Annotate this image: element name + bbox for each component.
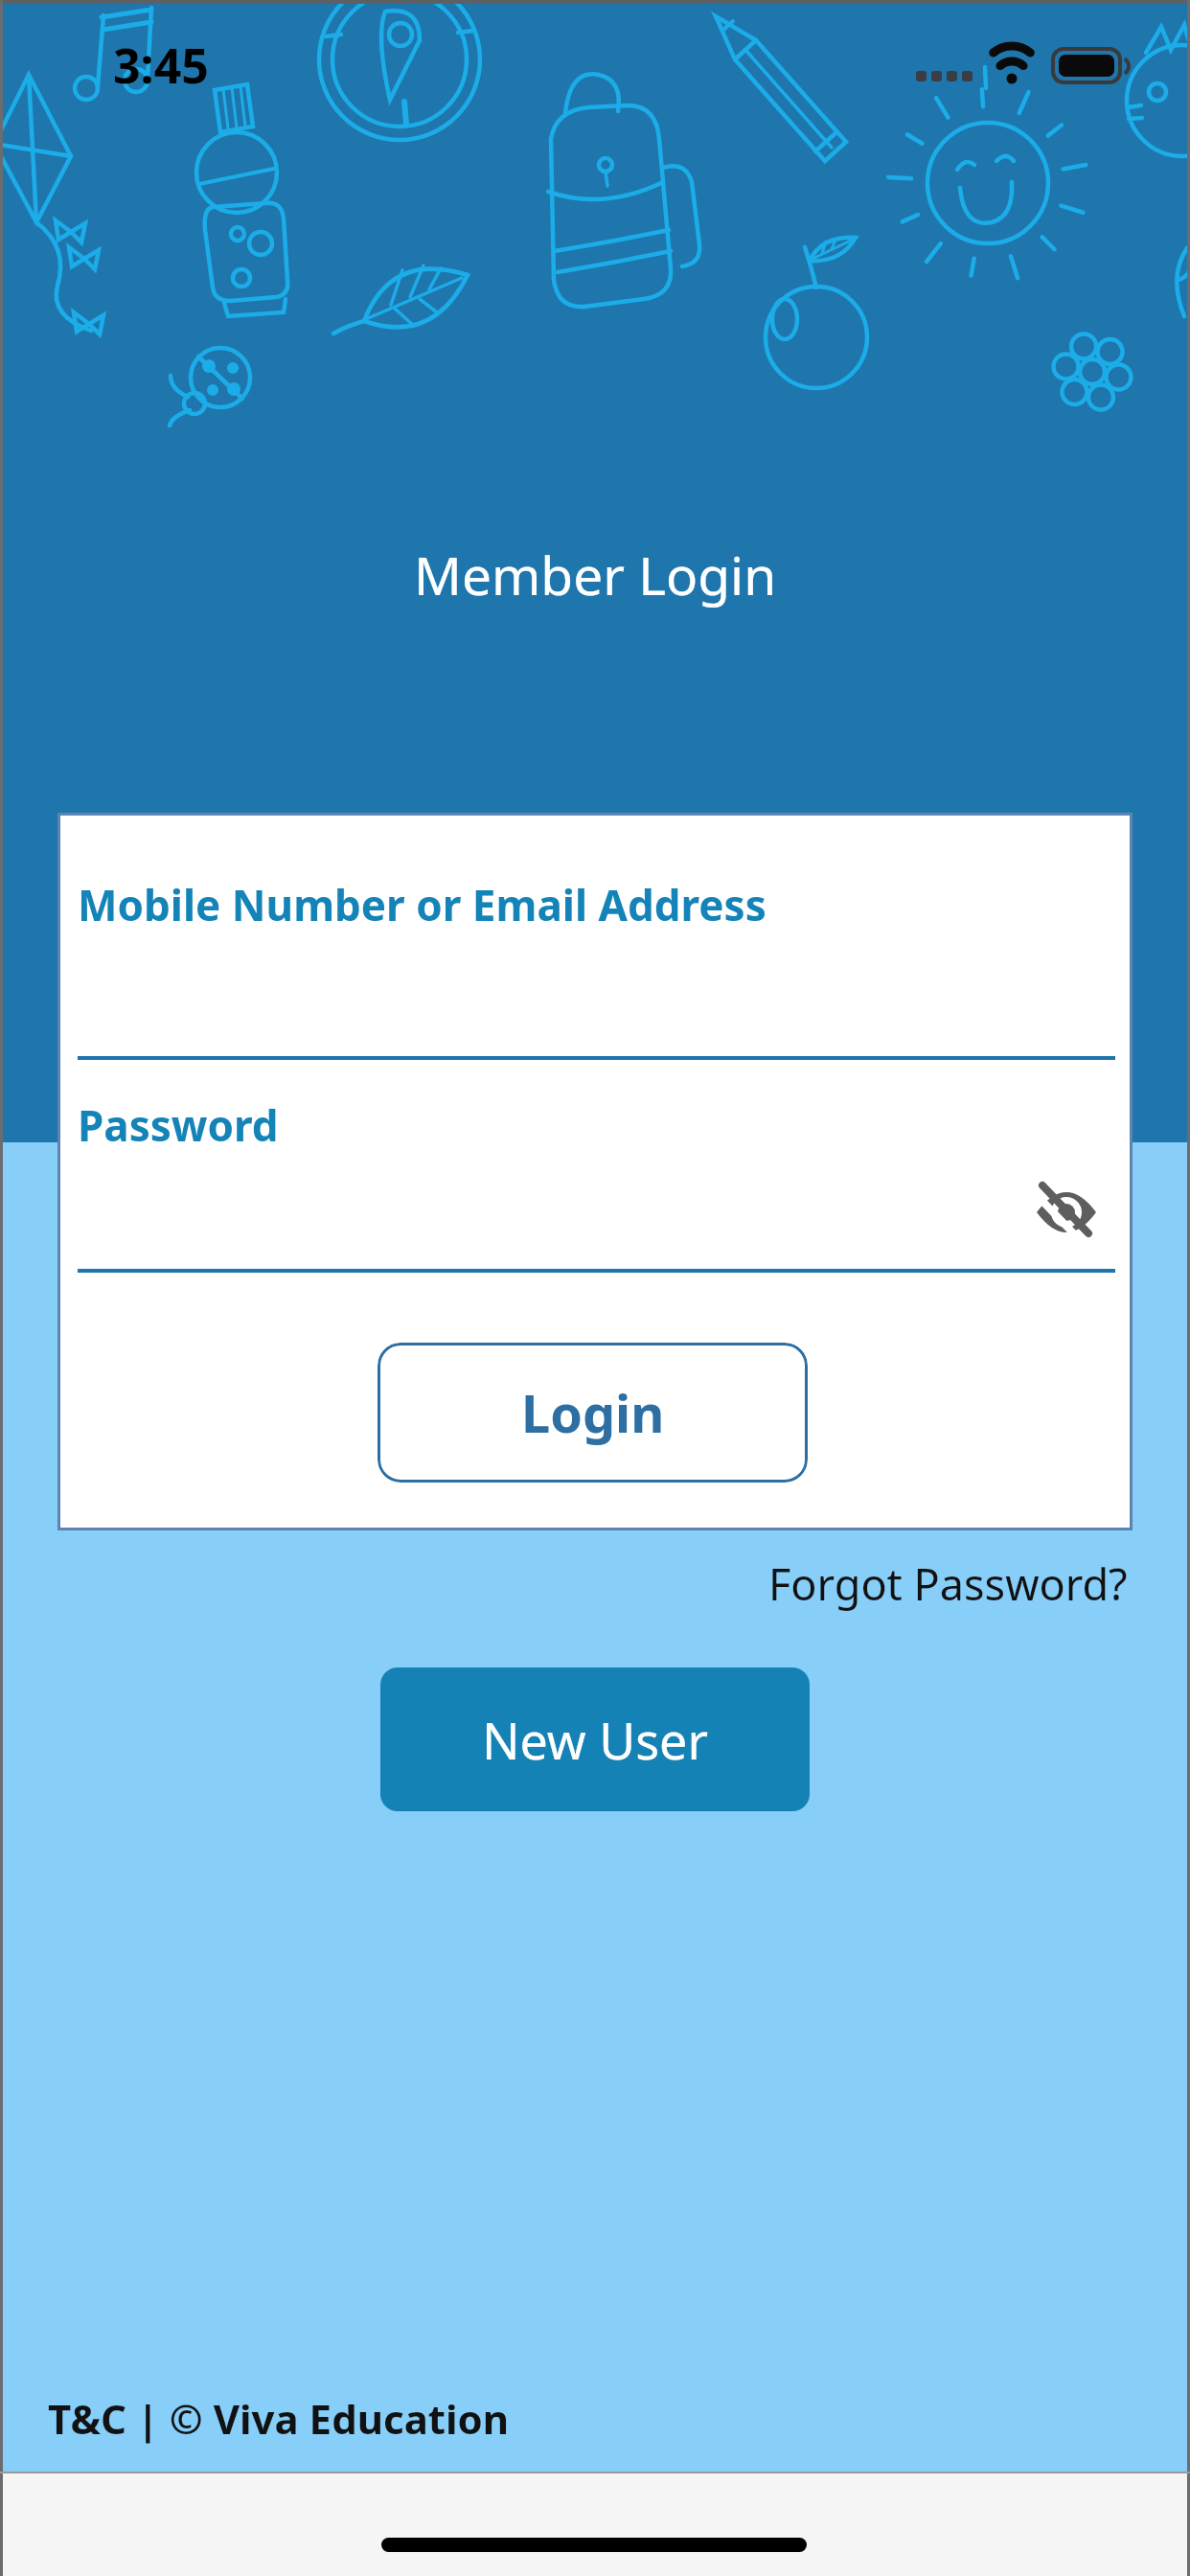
staticText: New User bbox=[482, 1706, 708, 1774]
staticText: Forgot Password? bbox=[768, 1554, 1128, 1613]
button[interactable]: Login bbox=[378, 1343, 808, 1483]
staticText: Login bbox=[521, 1377, 665, 1448]
button[interactable]: Forgot Password? bbox=[768, 1554, 1128, 1613]
button[interactable] bbox=[1035, 1185, 1098, 1239]
button[interactable]: Mobile Number or Email Address bbox=[78, 853, 1115, 1058]
staticText: Mobile Number or Email Address bbox=[78, 876, 767, 933]
staticText: T&C | © Viva Education bbox=[48, 2391, 510, 2446]
staticText: Password bbox=[78, 1096, 279, 1154]
staticText: Member Login bbox=[414, 539, 777, 610]
button[interactable]: New User bbox=[380, 1667, 810, 1811]
button[interactable]: Password bbox=[78, 1077, 1115, 1269]
staticText: 3:45 bbox=[113, 33, 209, 98]
